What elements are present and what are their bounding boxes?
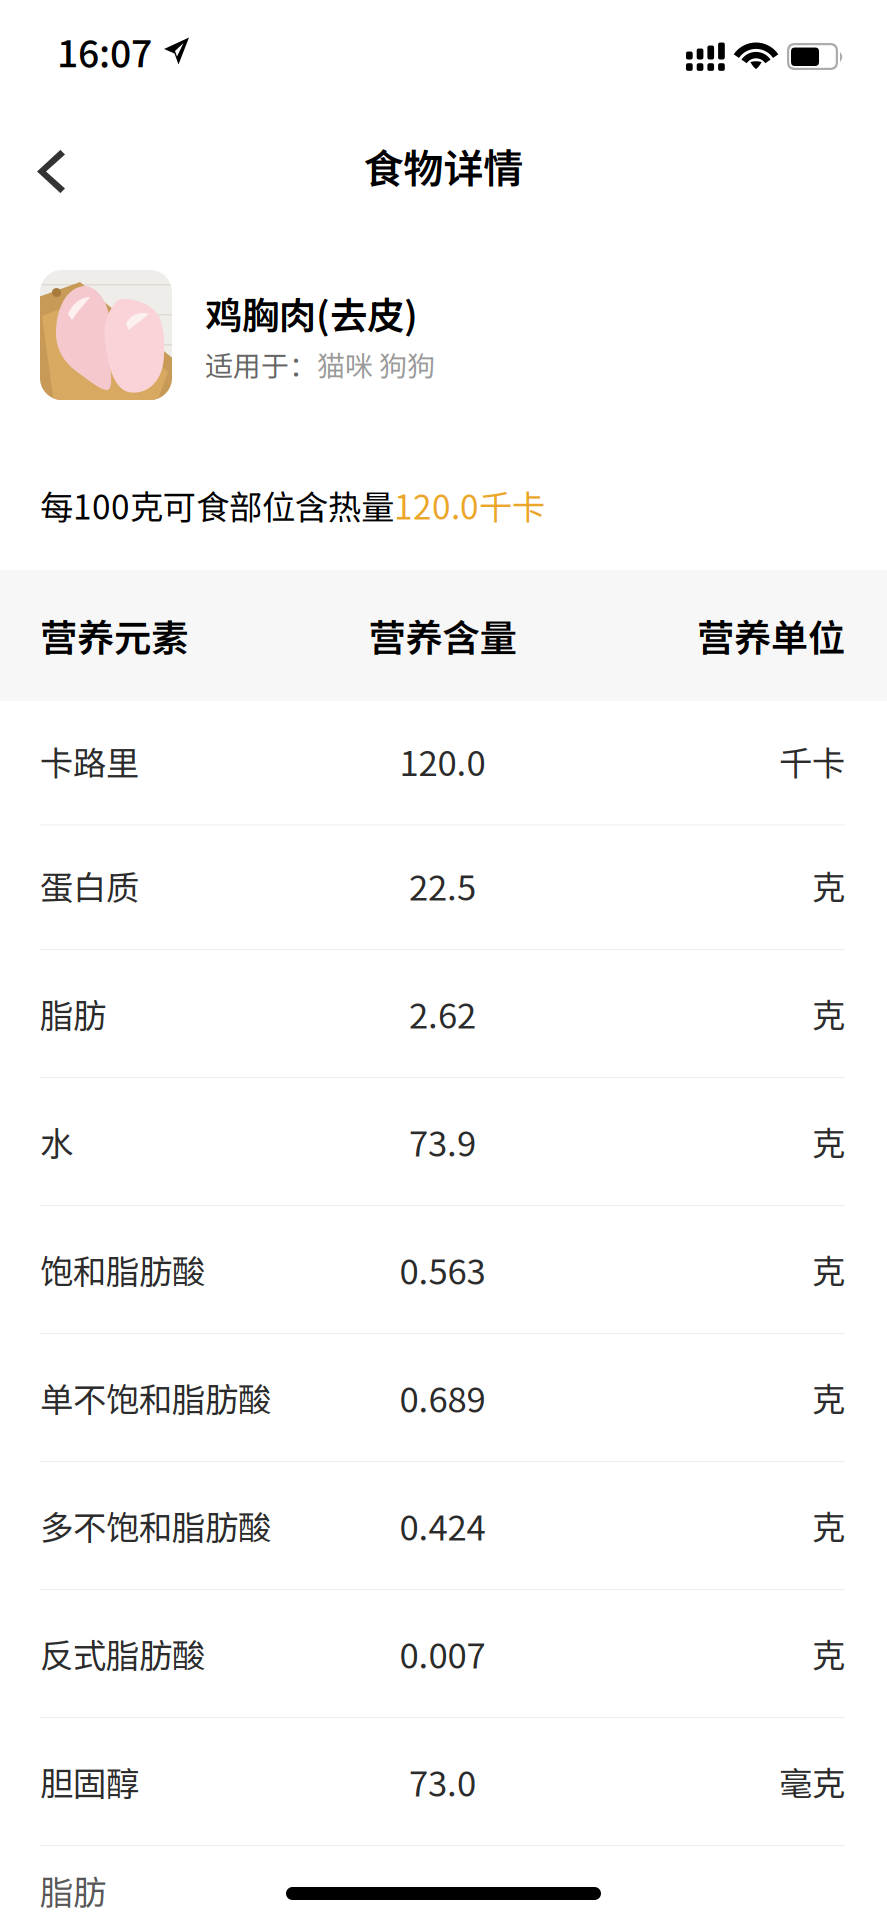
staticText: 2.62 xyxy=(409,988,476,1039)
staticText: 每100克可食部位含热量 xyxy=(40,481,394,529)
staticText: 蛋白质 xyxy=(40,861,139,910)
staticText: 适用于： xyxy=(205,344,317,385)
staticText: 克 xyxy=(812,1501,845,1550)
staticText: 脂肪 xyxy=(40,1866,106,1914)
staticText: 卡路里 xyxy=(40,737,139,785)
staticText: 克 xyxy=(812,989,845,1038)
staticText: 73.0 xyxy=(409,1756,476,1807)
staticText: 营养单位 xyxy=(697,608,845,663)
staticText: 千卡 xyxy=(779,737,845,785)
staticText: 0.563 xyxy=(399,1244,485,1295)
staticText: 120.0 xyxy=(399,736,485,786)
staticText: 猫咪 狗狗 xyxy=(317,344,435,385)
staticText: 食物详情 xyxy=(363,137,523,195)
button[interactable]: 返回 xyxy=(0,115,100,217)
staticText: 0.007 xyxy=(399,1628,485,1679)
staticText: 120.0千卡 xyxy=(394,481,545,529)
staticText: 22.5 xyxy=(409,860,476,911)
staticText: 0.689 xyxy=(399,1372,485,1423)
staticText: 胆固醇 xyxy=(40,1757,139,1806)
staticText: 16:07 xyxy=(57,24,152,78)
staticText: 克 xyxy=(812,1245,845,1294)
staticText: 多不饱和脂肪酸 xyxy=(40,1501,271,1550)
staticText: 单不饱和脂肪酸 xyxy=(40,1373,271,1422)
staticText: 鸡胸肉(去皮) xyxy=(205,286,418,340)
staticText: 73.9 xyxy=(409,1116,476,1167)
staticText: 脂肪 xyxy=(40,989,106,1038)
staticText: 克 xyxy=(812,1373,845,1422)
staticText: 营养含量 xyxy=(368,608,516,663)
staticText: 饱和脂肪酸 xyxy=(40,1245,205,1294)
staticText: 克 xyxy=(812,861,845,910)
staticText: 毫克 xyxy=(779,1757,845,1806)
staticText: 0.424 xyxy=(399,1500,485,1551)
staticText: 克 xyxy=(812,1629,845,1678)
staticText: 水 xyxy=(40,1117,73,1166)
staticText: 营养元素 xyxy=(40,608,188,663)
staticText: 克 xyxy=(812,1117,845,1166)
staticText: 反式脂肪酸 xyxy=(40,1629,205,1678)
